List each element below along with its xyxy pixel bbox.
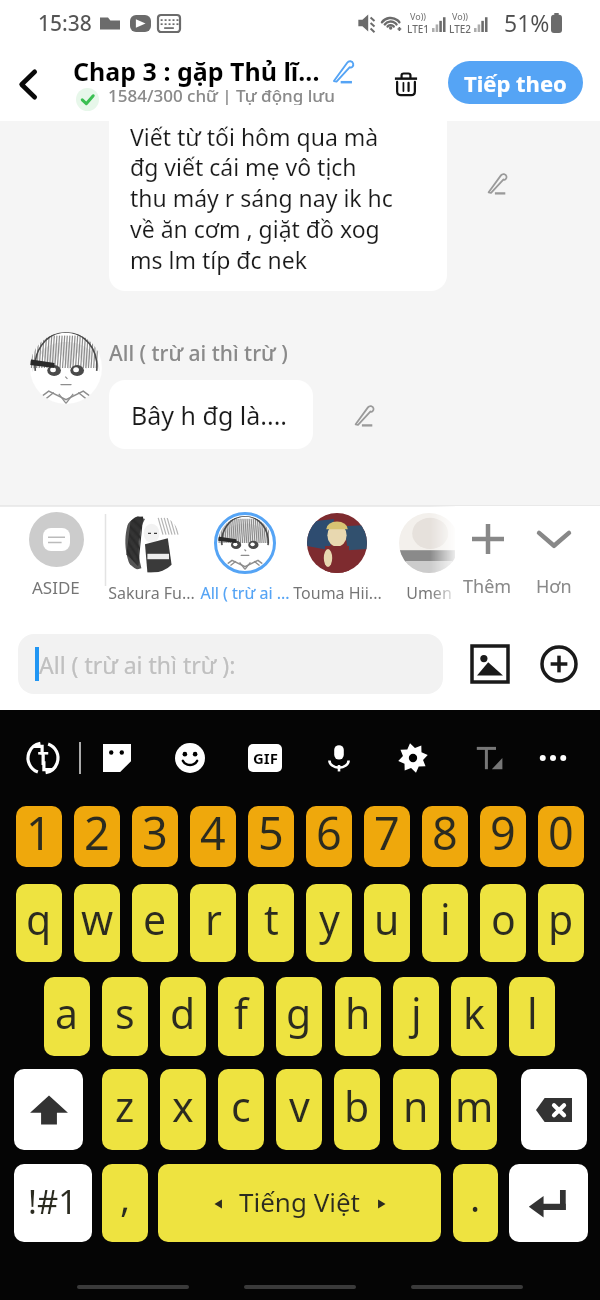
other: GIF — [248, 744, 282, 772]
button[interactable]: Space — [158, 1164, 441, 1242]
button[interactable]: a — [44, 977, 90, 1056]
other: Emoji — [174, 742, 206, 774]
button[interactable]: 2 — [74, 806, 120, 867]
staticText: Bây h đg là.... — [131, 398, 288, 432]
button[interactable]: p — [538, 884, 584, 962]
button[interactable]: Period — [453, 1164, 498, 1242]
button[interactable]: 8 — [422, 806, 468, 867]
staticText: y — [319, 891, 340, 947]
button[interactable]: Backspace — [521, 1069, 587, 1150]
button[interactable]: ASIDE — [28, 512, 84, 599]
button[interactable]: q — [16, 884, 62, 962]
button[interactable]: 0 — [538, 806, 584, 867]
staticText: All ( trừ ai thì trừ ): — [39, 649, 236, 680]
button[interactable]: All ( trừ ai ... — [199, 512, 291, 604]
button[interactable]: k — [451, 977, 497, 1056]
button[interactable]: Comma — [102, 1164, 148, 1242]
staticText: m — [455, 1078, 494, 1134]
other: Edit title — [328, 56, 358, 86]
staticText: Tiếp theo — [464, 68, 567, 98]
other: Voice input — [323, 742, 355, 774]
button[interactable]: w — [74, 884, 120, 962]
button[interactable] — [30, 332, 102, 404]
other: More options — [537, 742, 569, 774]
button[interactable]: Translate — [18, 733, 68, 783]
button[interactable]: r — [190, 884, 236, 962]
button[interactable]: Emoji — [165, 733, 215, 783]
button[interactable]: All ( trừ ai thì trừ ): — [18, 634, 443, 694]
button[interactable]: 4 — [190, 806, 236, 867]
button[interactable]: 9 — [480, 806, 526, 867]
button[interactable]: h — [335, 977, 381, 1056]
staticText: h — [345, 985, 371, 1041]
button[interactable]: Insert image — [468, 642, 512, 686]
button[interactable]: l — [509, 977, 555, 1056]
button[interactable]: Thêm — [455, 522, 520, 599]
staticText: c — [231, 1078, 251, 1134]
staticText: LTE2 — [449, 22, 472, 36]
button[interactable]: j — [393, 977, 439, 1056]
staticText: f — [234, 985, 249, 1041]
staticText: LTE1 — [407, 22, 430, 36]
button[interactable]: Voice input — [314, 733, 364, 783]
staticText: 2 — [84, 806, 110, 863]
staticText: t — [264, 891, 279, 947]
staticText: 1 — [26, 806, 52, 863]
button[interactable]: s — [102, 977, 148, 1056]
button[interactable]: 6 — [306, 806, 352, 867]
button[interactable]: 1 — [16, 806, 62, 867]
button[interactable]: Sticker — [92, 733, 142, 783]
staticText: b — [344, 1078, 370, 1134]
button[interactable]: Tiếp theo — [448, 61, 583, 104]
button[interactable]: Symbols — [14, 1164, 92, 1242]
button[interactable]: Bây h đg là.... — [109, 380, 313, 449]
staticText: s — [115, 985, 135, 1041]
button[interactable]: z — [102, 1069, 148, 1150]
button[interactable]: Text editing — [463, 733, 513, 783]
button[interactable]: Umen — [383, 512, 475, 604]
button[interactable]: g — [276, 977, 322, 1056]
button[interactable]: GIF — [240, 733, 290, 783]
button[interactable]: Shift — [14, 1069, 83, 1150]
staticText: Touma Hii... — [293, 582, 382, 604]
staticText: , — [120, 1171, 131, 1223]
button[interactable]: y — [306, 884, 352, 962]
button[interactable]: e — [132, 884, 178, 962]
staticText: Umen — [406, 582, 452, 604]
button[interactable]: Enter — [509, 1164, 588, 1242]
button[interactable]: Chap 3 : gặp Thủ lĩ... — [73, 54, 358, 88]
button[interactable]: Edit message — [484, 170, 510, 196]
button[interactable]: n — [393, 1069, 439, 1150]
staticText: o — [491, 891, 516, 947]
button[interactable]: 5 — [248, 806, 294, 867]
button[interactable]: d — [160, 977, 206, 1056]
button[interactable]: Delete — [382, 60, 430, 108]
button[interactable]: Hơn — [525, 522, 583, 599]
staticText: !#1 — [28, 1179, 78, 1224]
button[interactable]: Touma Hii... — [291, 512, 383, 604]
button[interactable]: i — [422, 884, 468, 962]
staticText: i — [440, 891, 451, 947]
staticText: All ( trừ ai thì trừ ) — [109, 339, 288, 368]
button[interactable]: o — [480, 884, 526, 962]
button[interactable]: v — [276, 1069, 322, 1150]
button[interactable]: Viết từ tối hôm qua mà đg viết cái mẹ vô… — [109, 105, 447, 291]
button[interactable]: Add — [537, 642, 581, 686]
button[interactable]: c — [218, 1069, 264, 1150]
staticText: e — [143, 891, 167, 947]
button[interactable]: Sakura Fu... — [105, 512, 197, 604]
other: Text editing — [472, 742, 504, 774]
button[interactable]: f — [218, 977, 264, 1056]
button[interactable]: Settings — [388, 733, 438, 783]
other: Sticker — [101, 742, 133, 774]
button[interactable]: Back — [0, 56, 56, 112]
button[interactable]: x — [160, 1069, 206, 1150]
button[interactable]: t — [248, 884, 294, 962]
button[interactable]: More options — [528, 733, 578, 783]
button[interactable]: Edit message 2 — [351, 402, 377, 428]
button[interactable]: 7 — [364, 806, 410, 867]
button[interactable]: m — [451, 1069, 497, 1150]
button[interactable]: u — [364, 884, 410, 962]
button[interactable]: b — [334, 1069, 380, 1150]
button[interactable]: 3 — [132, 806, 178, 867]
